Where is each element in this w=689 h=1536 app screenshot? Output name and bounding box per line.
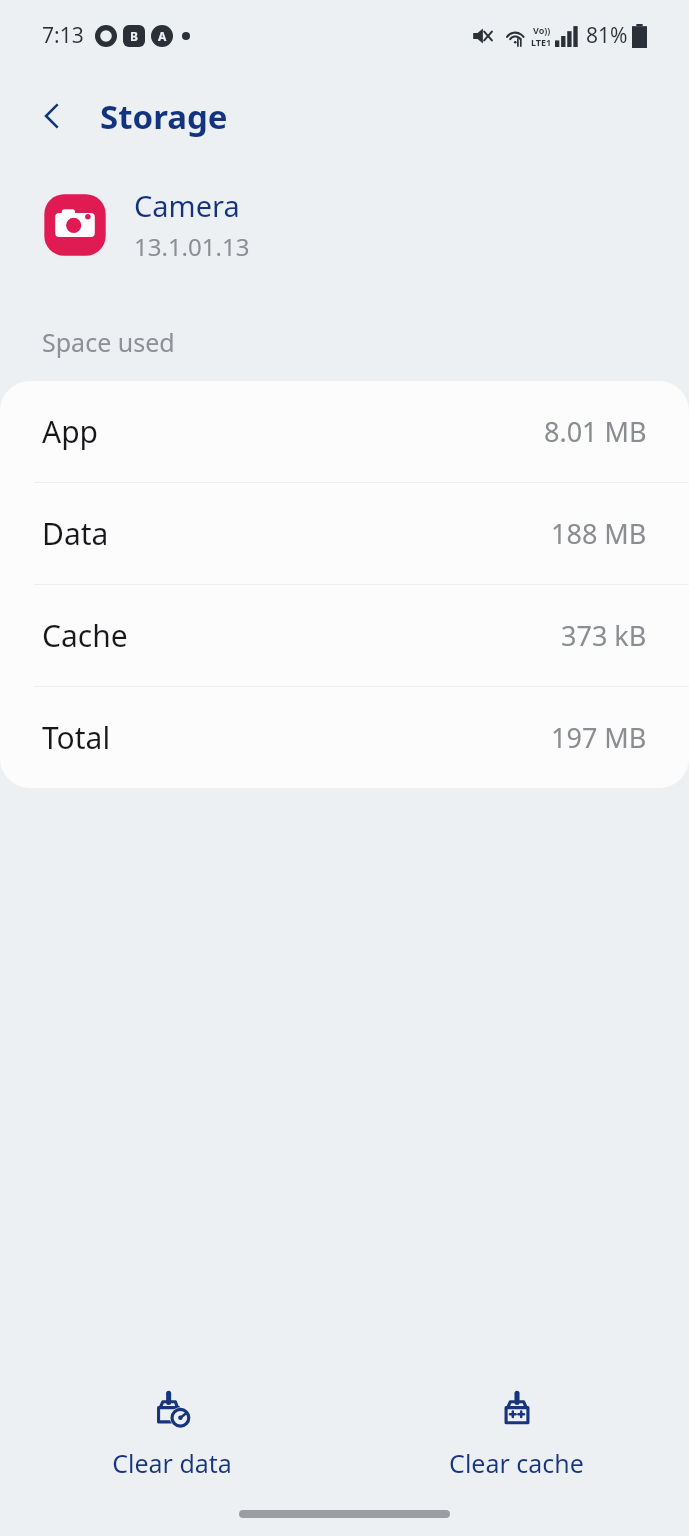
staticText: Data	[42, 513, 109, 554]
staticText: Clear data	[112, 1446, 232, 1480]
staticText: 197 MB	[551, 719, 647, 756]
staticText: Clear cache	[449, 1446, 584, 1480]
staticText: LTE1	[531, 36, 552, 48]
staticText: Storage	[100, 94, 228, 139]
staticText: 8.01 MB	[544, 413, 647, 450]
staticText: Camera	[134, 186, 240, 225]
staticText: 7:13	[42, 21, 84, 50]
button[interactable]: Clear data	[86, 1382, 258, 1488]
button[interactable]: Total	[0, 687, 689, 788]
staticText: 13.1.01.13	[134, 230, 250, 263]
staticText: 373 kB	[561, 617, 647, 654]
staticText: Cache	[42, 615, 128, 656]
staticText: 81%	[586, 21, 628, 50]
button[interactable]: Cache	[0, 585, 689, 686]
staticText: B	[130, 28, 138, 44]
staticText: 188 MB	[551, 515, 647, 552]
button[interactable]: Clear cache	[423, 1382, 610, 1488]
staticText: App	[42, 411, 99, 452]
button[interactable]: Back	[24, 88, 80, 144]
button[interactable]: App	[0, 381, 689, 482]
staticText: Space used	[42, 325, 175, 359]
button[interactable]: Data	[0, 483, 689, 584]
staticText: Total	[42, 717, 111, 758]
staticText: Vo))	[533, 24, 551, 36]
staticText: A	[158, 28, 167, 44]
